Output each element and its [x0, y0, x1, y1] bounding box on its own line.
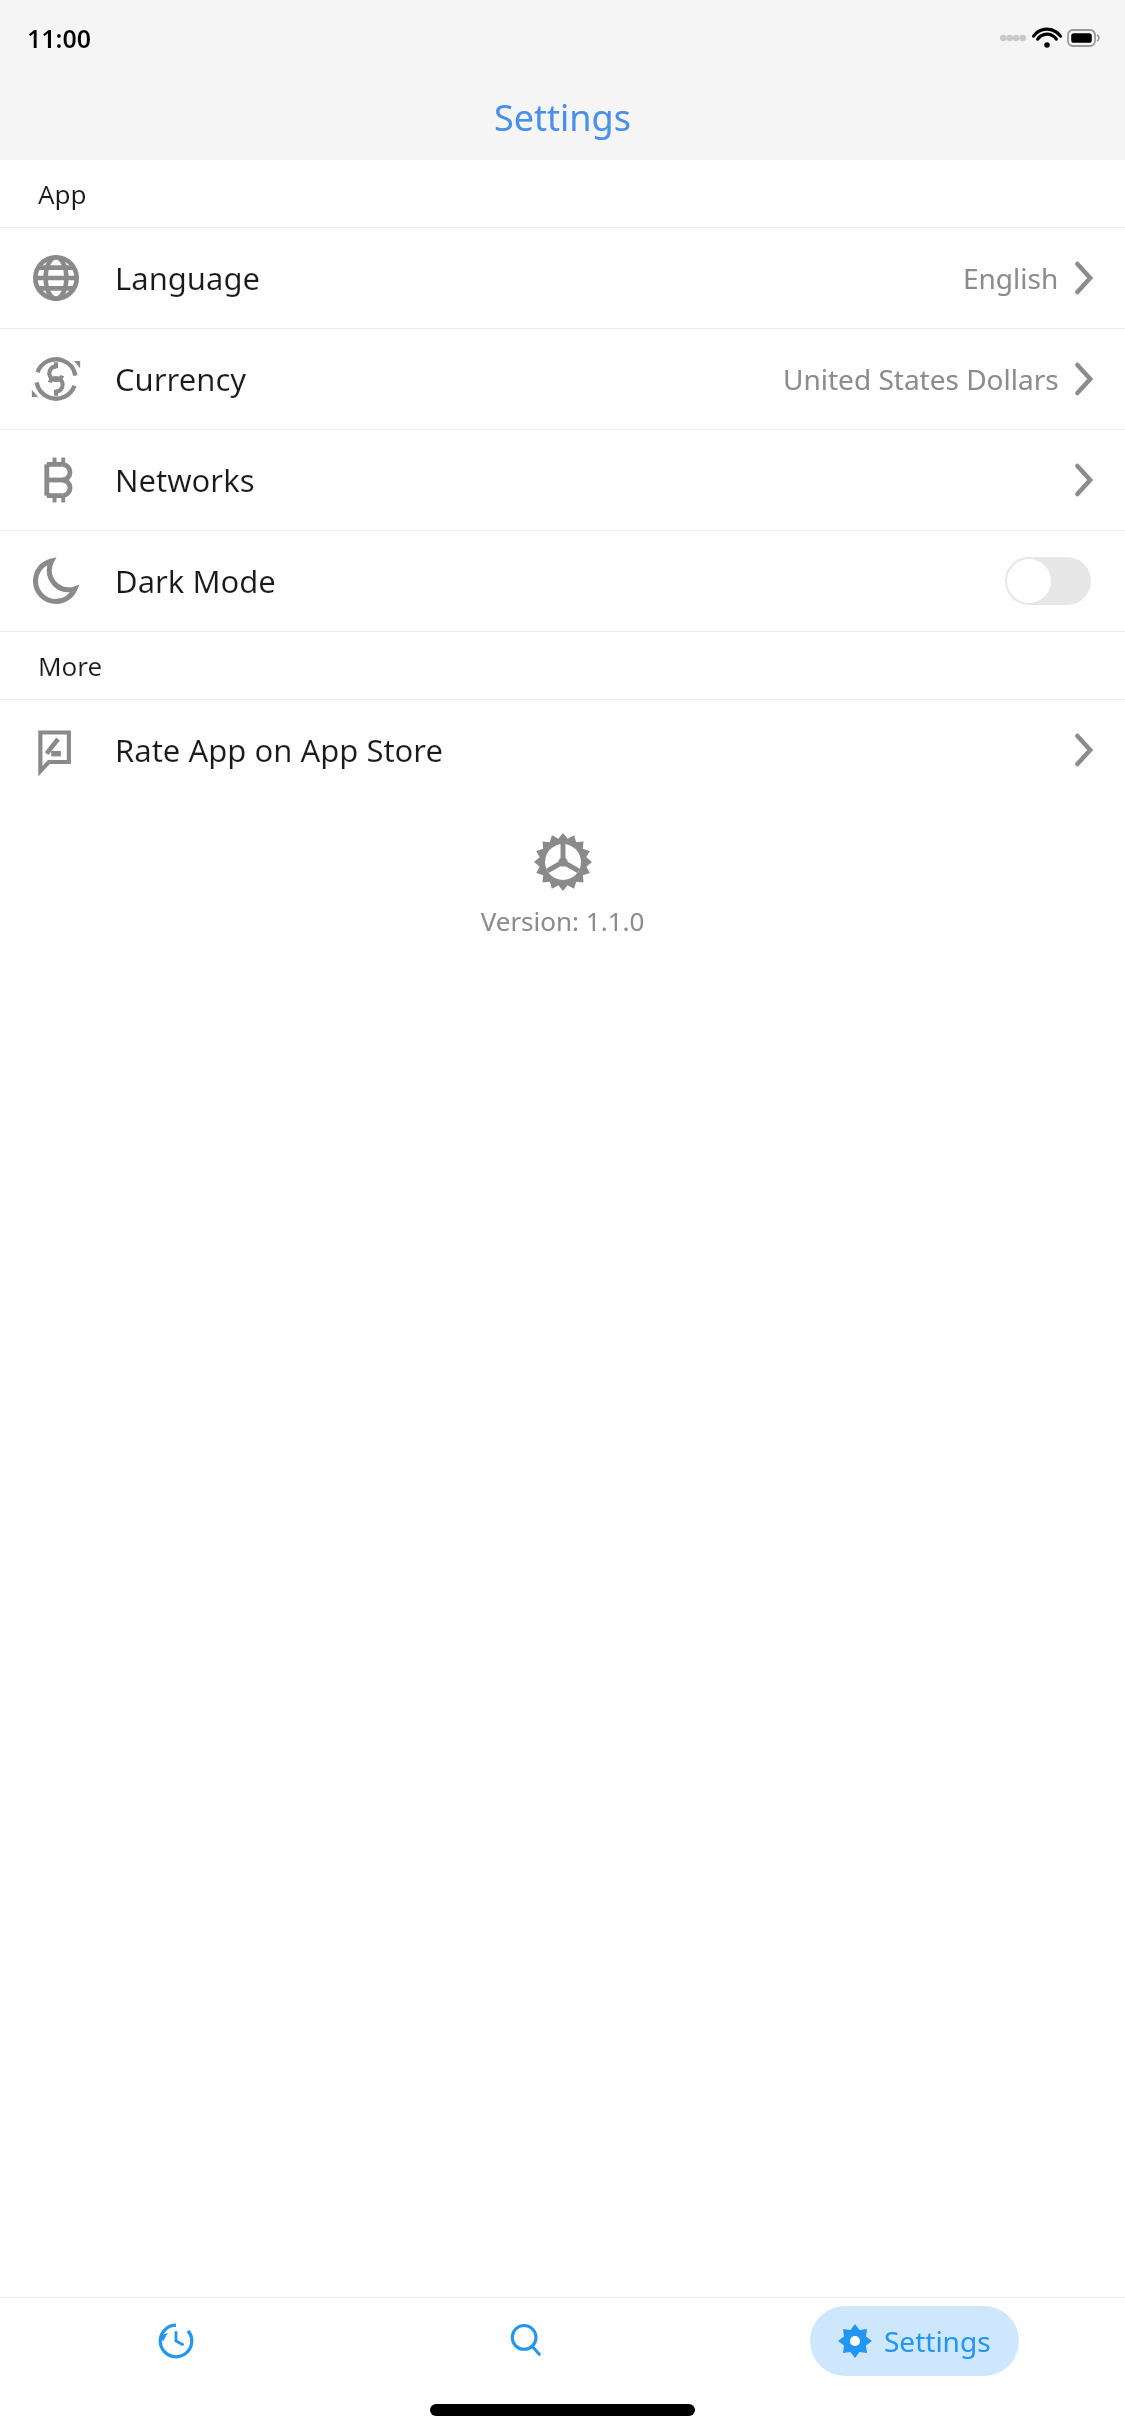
button[interactable]: Currency: [0, 329, 1125, 429]
staticText: 11:00: [27, 21, 92, 55]
staticText: Settings: [494, 93, 631, 142]
staticText: Language: [115, 257, 260, 299]
staticText: United States Dollars: [783, 360, 1059, 398]
staticText: Currency: [115, 358, 247, 400]
staticText: Settings: [884, 2322, 991, 2360]
staticText: App: [38, 176, 87, 211]
staticText: More: [38, 648, 103, 683]
staticText: Version: 1.1.0: [0, 903, 1125, 938]
button[interactable]: Dark Mode: [0, 531, 1125, 631]
button[interactable]: Settings: [810, 2306, 1019, 2376]
button[interactable]: Dark Mode toggle: [1005, 557, 1091, 605]
button[interactable]: History: [0, 2298, 351, 2384]
button[interactable]: Rate App on App Store: [0, 700, 1125, 800]
button[interactable]: Language: [0, 228, 1125, 328]
staticText: Networks: [115, 459, 255, 501]
button[interactable]: Search: [351, 2298, 703, 2384]
button[interactable]: Networks: [0, 430, 1125, 530]
staticText: Rate App on App Store: [115, 729, 444, 771]
staticText: English: [963, 259, 1059, 297]
staticText: Dark Mode: [115, 560, 276, 602]
